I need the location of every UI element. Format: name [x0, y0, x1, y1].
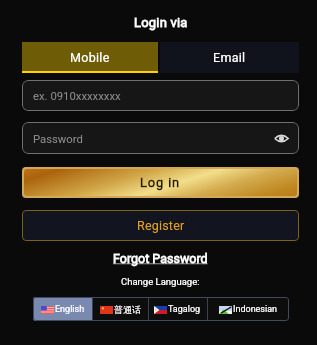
- button[interactable]: Indonesian: [207, 297, 289, 321]
- button[interactable]: Register: [22, 210, 299, 241]
- staticText: English: [55, 304, 85, 315]
- staticText: Email: [213, 50, 246, 65]
- staticText: Login via: [134, 15, 188, 30]
- staticText: Log in: [140, 175, 181, 190]
- button[interactable]: English: [33, 297, 92, 321]
- staticText: Password: [33, 133, 83, 146]
- staticText: Change Language:: [121, 276, 200, 287]
- button[interactable]: 普通话: [92, 297, 148, 321]
- button[interactable]: Tagalog: [148, 297, 207, 321]
- staticText: Mobile: [70, 50, 110, 65]
- button[interactable]: ex. 0910xxxxxxxx: [22, 80, 299, 111]
- button[interactable]: Email: [160, 42, 299, 73]
- staticText: Register: [137, 218, 185, 233]
- staticText: ex. 0910xxxxxxxx: [33, 90, 121, 103]
- button[interactable]: Password: [22, 122, 299, 154]
- staticText: Indonesian: [233, 304, 278, 315]
- staticText: 普通话: [114, 304, 141, 315]
- button[interactable]: Show password: [271, 128, 291, 148]
- button[interactable]: Log in: [24, 169, 297, 196]
- button[interactable]: Mobile: [22, 42, 158, 73]
- button[interactable]: Forgot Password: [113, 251, 208, 266]
- staticText: Tagalog: [168, 304, 201, 315]
